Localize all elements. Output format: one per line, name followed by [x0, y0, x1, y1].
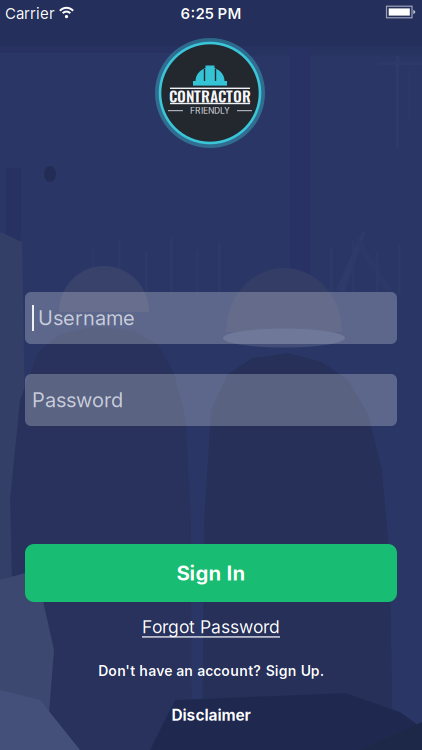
- button[interactable]: Username: [25, 292, 397, 344]
- staticText: Password: [32, 388, 123, 412]
- button[interactable]: Sign In: [25, 544, 397, 602]
- staticText: Sign In: [176, 561, 245, 585]
- staticText: Forgot Password: [142, 616, 280, 638]
- staticText: Disclaimer: [171, 706, 250, 724]
- button[interactable]: Disclaimer: [171, 706, 250, 724]
- staticText: 6:25 PM: [180, 4, 241, 22]
- staticText: Username: [38, 306, 135, 330]
- button[interactable]: Password: [25, 374, 397, 426]
- staticText: Carrier: [5, 4, 55, 22]
- button[interactable]: Sign Up.: [266, 662, 324, 679]
- staticText: Sign Up.: [266, 662, 324, 679]
- staticText: CONTRACTOR: [169, 84, 251, 107]
- staticText: FRIENDLY: [190, 105, 230, 116]
- staticText: Don't have an account?: [98, 662, 261, 679]
- button[interactable]: Forgot Password: [142, 616, 280, 638]
